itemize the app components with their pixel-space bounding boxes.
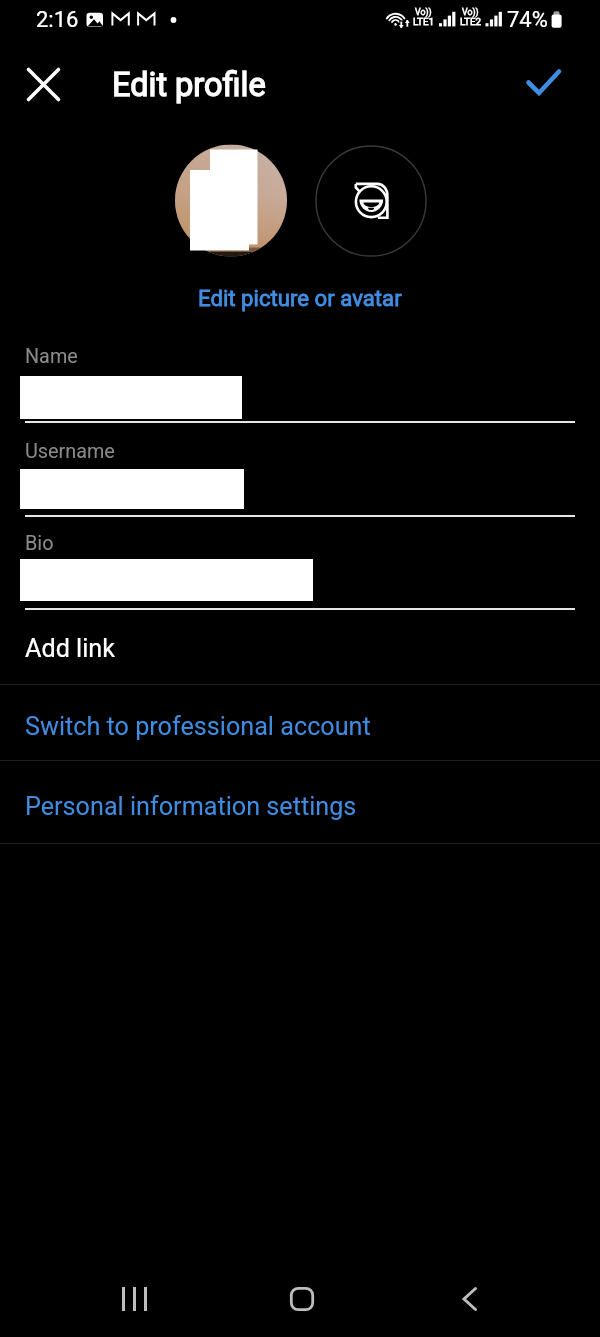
- staticText: 2:16: [36, 7, 79, 33]
- staticText: Add link: [25, 634, 116, 664]
- staticText: Edit profile: [112, 66, 266, 104]
- staticText: Vo)): [462, 7, 479, 17]
- button[interactable]: Close: [15, 56, 72, 113]
- button[interactable]: Bio: [0, 527, 600, 614]
- button[interactable]: Username: [0, 435, 600, 521]
- button[interactable]: Back: [443, 1269, 503, 1329]
- staticText: Switch to professional account: [25, 712, 371, 742]
- button[interactable]: Personal information settings: [0, 766, 600, 848]
- button[interactable]: Recent apps: [104, 1269, 164, 1329]
- button[interactable]: Done: [515, 56, 572, 113]
- staticText: LTE2: [460, 16, 482, 28]
- button[interactable]: Name: [0, 340, 600, 427]
- staticText: 74%: [507, 7, 548, 33]
- staticText: Bio: [25, 532, 54, 555]
- staticText: Personal information settings: [25, 792, 357, 822]
- button[interactable]: Edit picture or avatar: [0, 279, 600, 317]
- button[interactable]: Switch to professional account: [0, 689, 600, 764]
- button[interactable]: Add link: [0, 613, 600, 684]
- button[interactable]: Avatar: [316, 146, 426, 256]
- button[interactable]: Home: [271, 1269, 331, 1329]
- staticText: Name: [25, 345, 78, 368]
- staticText: LTE1: [413, 16, 435, 28]
- staticText: Vo)): [415, 7, 432, 17]
- staticText: Edit picture or avatar: [198, 285, 402, 311]
- staticText: Username: [25, 440, 115, 463]
